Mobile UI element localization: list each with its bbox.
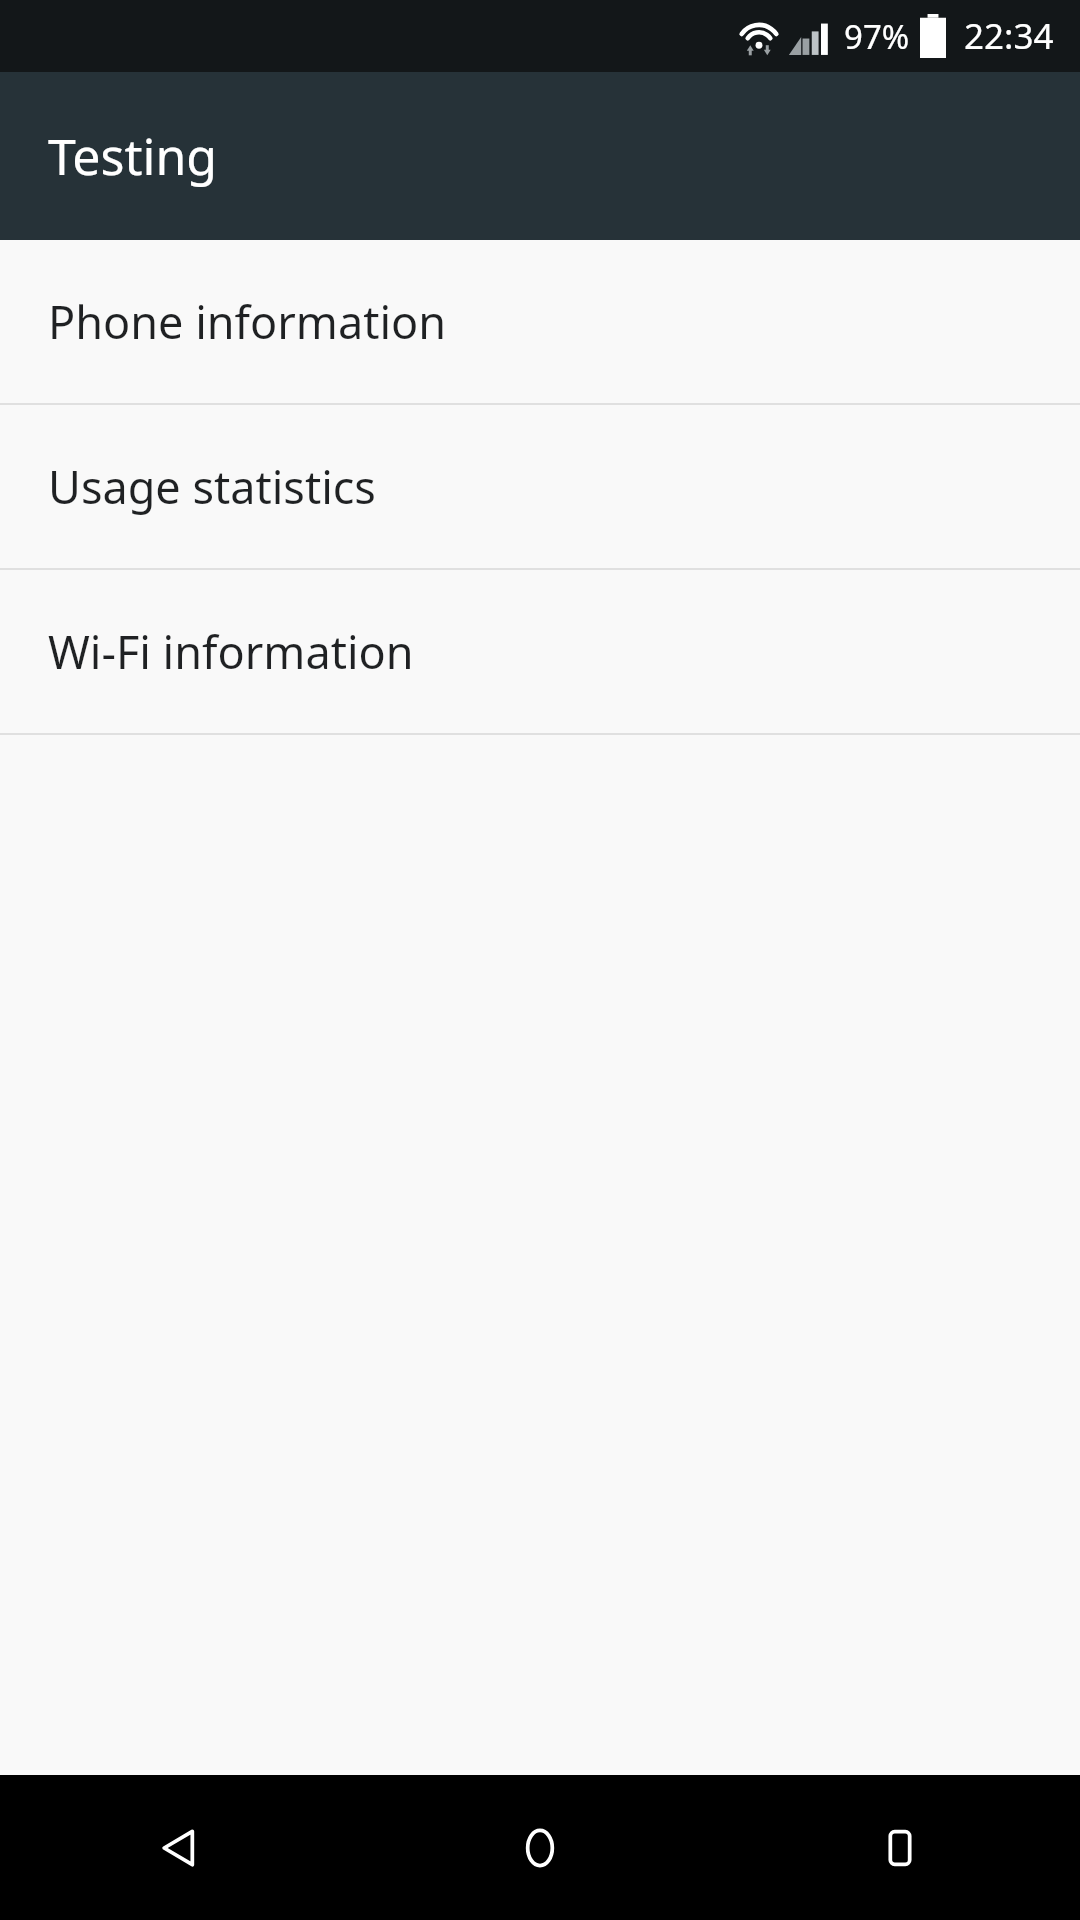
staticText: Wi-Fi information — [48, 621, 414, 682]
other: Wi-Fi signal — [736, 13, 782, 59]
staticText: 97% — [844, 14, 910, 59]
button[interactable]: Home — [360, 1775, 720, 1920]
staticText: Testing — [48, 122, 218, 190]
button[interactable]: Wi-Fi information — [0, 570, 1080, 733]
staticText: 22:34 — [964, 12, 1054, 60]
other: Battery 97 percent — [920, 14, 946, 58]
button[interactable]: Recent apps — [720, 1775, 1080, 1920]
button[interactable]: Back — [0, 1775, 360, 1920]
button[interactable]: Phone information — [0, 240, 1080, 403]
button[interactable]: Usage statistics — [0, 405, 1080, 568]
other: Cellular signal — [788, 14, 832, 58]
staticText: Usage statistics — [48, 456, 376, 517]
staticText: Phone information — [48, 291, 447, 352]
